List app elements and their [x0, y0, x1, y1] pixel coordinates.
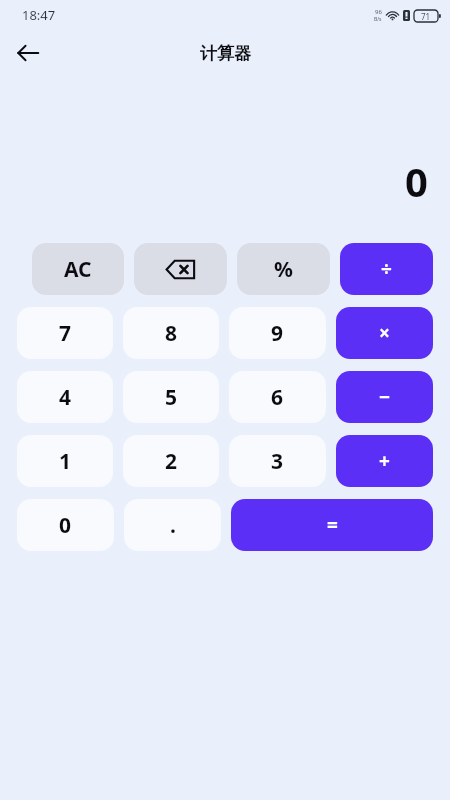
button[interactable]: . — [124, 499, 221, 551]
button[interactable]: Back — [6, 31, 50, 75]
staticText: 7 — [59, 319, 72, 348]
staticText: 0 — [59, 511, 72, 540]
staticText: 8 — [165, 319, 178, 348]
button[interactable]: 5 — [123, 371, 219, 423]
button[interactable]: ÷ — [340, 243, 433, 295]
button[interactable]: % — [237, 243, 330, 295]
button[interactable]: 3 — [229, 435, 326, 487]
staticText: 6 — [271, 383, 284, 412]
staticText: AC — [64, 255, 92, 284]
button[interactable]: = — [231, 499, 433, 551]
staticText: = — [327, 512, 338, 538]
button[interactable]: 1 — [17, 435, 113, 487]
button[interactable]: Backspace — [134, 243, 227, 295]
staticText: ÷ — [381, 256, 392, 282]
button[interactable]: 9 — [229, 307, 326, 359]
button[interactable]: 7 — [17, 307, 113, 359]
staticText: × — [379, 320, 390, 346]
button[interactable]: AC — [32, 243, 124, 295]
staticText: 计算器 — [200, 43, 251, 64]
button[interactable]: 2 — [123, 435, 219, 487]
staticText: . — [170, 511, 176, 540]
staticText: 2 — [165, 447, 178, 476]
staticText: 1 — [59, 447, 72, 476]
staticText: 5 — [165, 383, 178, 412]
staticText: 71 — [421, 11, 431, 22]
button[interactable]: 4 — [17, 371, 113, 423]
button[interactable]: + — [336, 435, 433, 487]
staticText: 3 — [271, 447, 284, 476]
button[interactable]: × — [336, 307, 433, 359]
button[interactable]: 0 — [17, 499, 114, 551]
staticText: 96 — [375, 8, 382, 16]
staticText: 0 — [405, 154, 428, 208]
staticText: − — [379, 384, 391, 410]
button[interactable]: − — [336, 371, 433, 423]
staticText: 18:47 — [22, 6, 56, 24]
staticText: B/s — [374, 16, 382, 23]
button[interactable]: 6 — [229, 371, 326, 423]
staticText: + — [379, 448, 390, 474]
staticText: 9 — [271, 319, 284, 348]
staticText: % — [274, 255, 293, 284]
staticText: 4 — [59, 383, 72, 412]
button[interactable]: 8 — [123, 307, 219, 359]
